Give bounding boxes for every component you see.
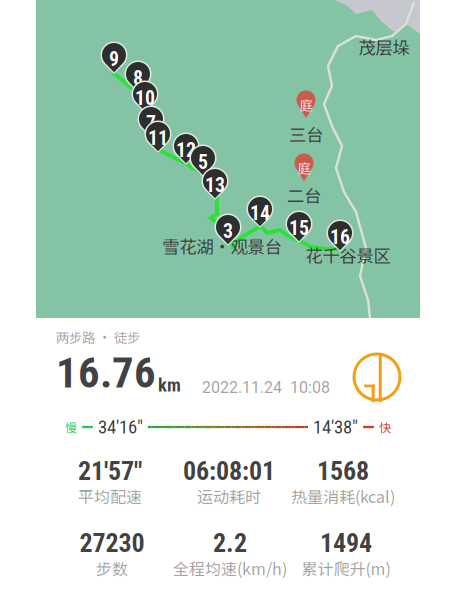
staticText: 庭 <box>299 95 312 114</box>
staticText: 花千谷景区 <box>305 242 390 268</box>
staticText: 27230 <box>79 528 144 558</box>
staticText: 34'16" <box>98 416 143 438</box>
staticText: 快 <box>379 418 391 436</box>
staticText: 14 <box>250 202 270 225</box>
staticText: 慢 <box>65 418 77 436</box>
staticText: 7 <box>146 112 156 135</box>
staticText: 21'57" <box>78 456 142 486</box>
staticText: 11 <box>148 127 168 150</box>
staticText: 10 <box>135 87 155 110</box>
staticText: km <box>158 374 181 396</box>
staticText: 运动耗时 <box>197 484 261 508</box>
staticText: 庭 <box>297 158 310 177</box>
staticText: 14'38" <box>313 416 358 438</box>
staticText: 1494 <box>320 528 372 558</box>
staticText: 茂层垛 <box>358 34 409 60</box>
staticText: 三台 <box>289 121 323 147</box>
staticText: 15 <box>289 217 309 240</box>
staticText: 平均配速 <box>78 484 142 508</box>
staticText: 5 <box>198 151 208 174</box>
staticText: 累计爬升(m) <box>301 556 390 580</box>
staticText: 06:08:01 <box>183 456 275 486</box>
staticText: 16.76 <box>56 348 156 398</box>
staticText: 全程均速(km/h) <box>173 556 287 580</box>
staticText: 2022.11.24 10:08 <box>202 378 330 397</box>
staticText: 12 <box>176 139 196 162</box>
staticText: 二台 <box>287 182 321 208</box>
staticText: 8 <box>133 67 143 90</box>
staticText: 9 <box>109 48 119 71</box>
staticText: 2.2 <box>213 528 247 558</box>
staticText: 1568 <box>317 456 369 486</box>
staticText: 两步路 · 徒步 <box>56 327 140 347</box>
staticText: 步数 <box>96 556 128 580</box>
staticText: 3 <box>223 220 233 243</box>
staticText: 雪花湖·观景台 <box>162 233 281 259</box>
staticText: 16 <box>330 226 350 249</box>
staticText: 13 <box>205 174 225 197</box>
staticText: 热量消耗(kcal) <box>291 484 395 508</box>
